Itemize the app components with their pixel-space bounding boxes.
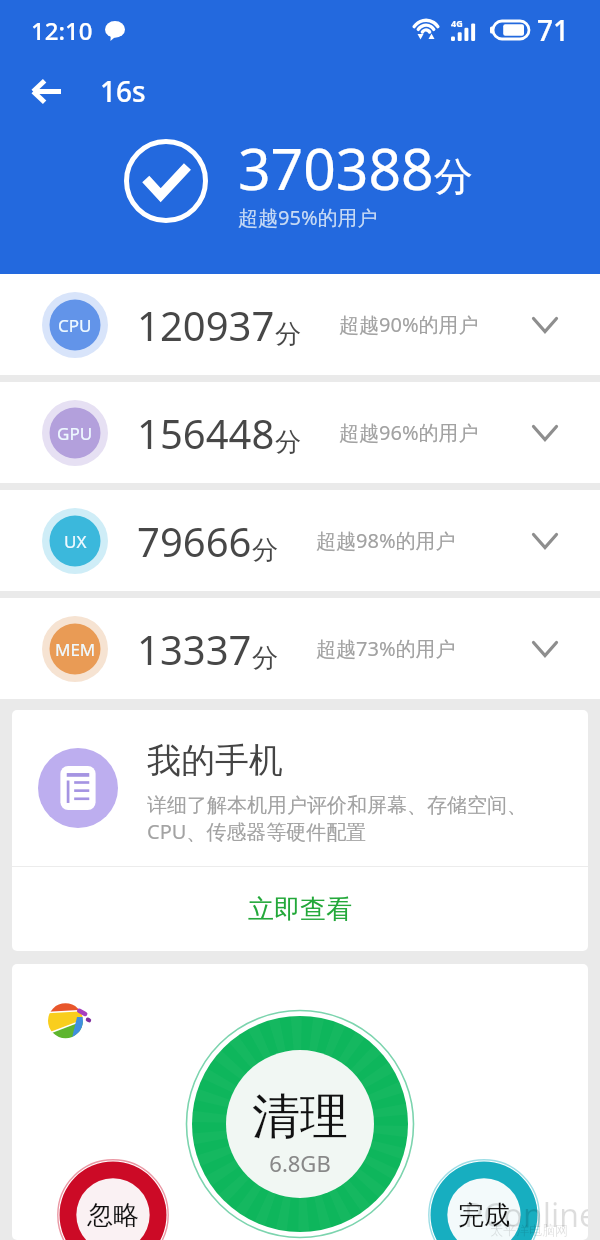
button[interactable]: Expand <box>513 401 577 465</box>
button[interactable]: Expand <box>513 617 577 681</box>
staticText: 立即查看 <box>248 893 352 926</box>
staticText: 12:10 <box>31 14 93 47</box>
button[interactable]: 忽略 <box>57 1159 169 1240</box>
button[interactable]: Back <box>16 60 78 122</box>
staticText: 156448 <box>137 406 275 460</box>
staticText: 4G <box>451 17 463 29</box>
staticText: 分 <box>434 152 473 201</box>
staticText: 超越73%的用户 <box>316 635 456 662</box>
staticText: UX <box>64 530 87 553</box>
staticText: 16s <box>100 72 146 110</box>
staticText: 我的手机 <box>147 739 283 782</box>
staticText: 13337 <box>137 622 252 676</box>
button[interactable]: GPU <box>0 382 600 483</box>
staticText: 清理 <box>200 1087 400 1147</box>
staticText: 120937 <box>137 298 275 352</box>
staticText: 370388 <box>238 129 434 207</box>
staticText: 分 <box>275 426 301 459</box>
button[interactable]: CPU <box>0 274 600 375</box>
staticText: 忽略 <box>87 1199 139 1232</box>
button[interactable]: UX <box>0 490 600 591</box>
staticText: 超越96%的用户 <box>339 419 479 446</box>
staticText: 分 <box>275 318 301 351</box>
button[interactable]: Expand <box>513 293 577 357</box>
button[interactable]: MEM <box>0 598 600 699</box>
staticText: 6.8GB <box>200 1148 400 1178</box>
button[interactable]: 完成 <box>428 1159 540 1240</box>
staticText: 超越98%的用户 <box>316 527 456 554</box>
staticText: GPU <box>57 422 93 445</box>
staticText: 太平洋电脑网 <box>490 1222 568 1238</box>
staticText: 超越95%的用户 <box>238 204 378 231</box>
button[interactable]: 立即查看 <box>12 867 588 951</box>
staticText: 79666 <box>137 514 252 568</box>
staticText: 71 <box>537 11 570 49</box>
staticText: 超越90%的用户 <box>339 311 479 338</box>
staticText: 分 <box>252 534 278 567</box>
staticText: PConline <box>464 1193 588 1237</box>
staticText: CPU <box>58 314 92 337</box>
staticText: 完成 <box>458 1199 510 1232</box>
button[interactable]: Expand <box>513 509 577 573</box>
staticText: 详细了解本机用户评价和屏幕、存储空间、 CPU、传感器等硬件配置 <box>147 793 527 845</box>
staticText: 分 <box>252 642 278 675</box>
staticText: MEM <box>55 638 96 661</box>
